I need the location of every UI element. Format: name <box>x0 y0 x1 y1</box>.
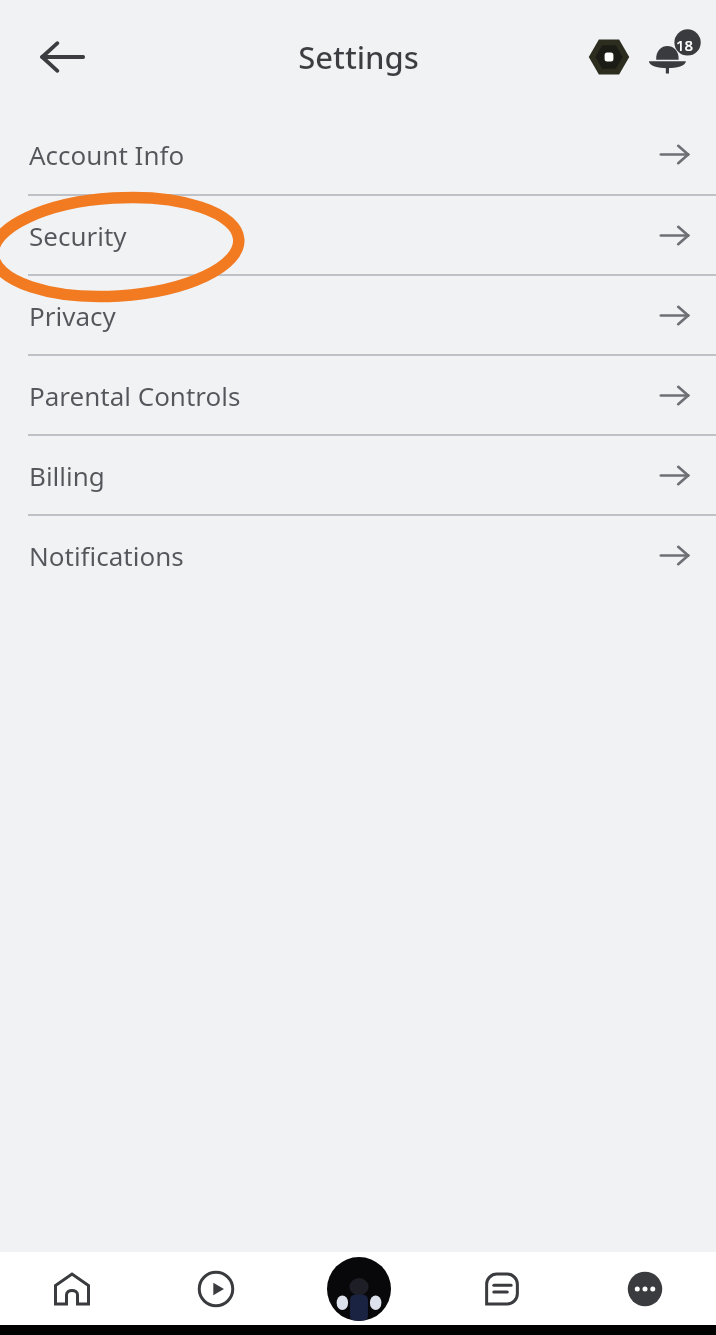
staticText: Security <box>29 218 127 253</box>
staticText: Account Info <box>29 137 185 172</box>
button[interactable]: Privacy <box>0 276 716 354</box>
staticText: Settings <box>298 36 419 78</box>
button[interactable]: Security <box>0 196 716 274</box>
button[interactable]: More <box>573 1252 716 1325</box>
staticText: 18 <box>676 35 694 55</box>
button[interactable]: Account Info <box>0 114 716 194</box>
button[interactable]: Charts <box>144 1252 287 1325</box>
button[interactable]: Notifications, 18 unread <box>642 26 704 88</box>
button[interactable]: Back <box>20 15 104 99</box>
button[interactable]: Home <box>0 1252 144 1325</box>
staticText: Privacy <box>29 298 116 333</box>
button[interactable]: Parental Controls <box>0 356 716 434</box>
staticText: Billing <box>29 458 105 493</box>
button[interactable]: Avatar <box>287 1252 430 1325</box>
button[interactable]: Chat <box>430 1252 573 1325</box>
button[interactable]: Notifications <box>0 516 716 594</box>
staticText: Notifications <box>29 538 184 573</box>
staticText: Parental Controls <box>29 378 241 413</box>
button[interactable]: Billing <box>0 436 716 514</box>
button[interactable]: Robux balance <box>580 28 638 86</box>
